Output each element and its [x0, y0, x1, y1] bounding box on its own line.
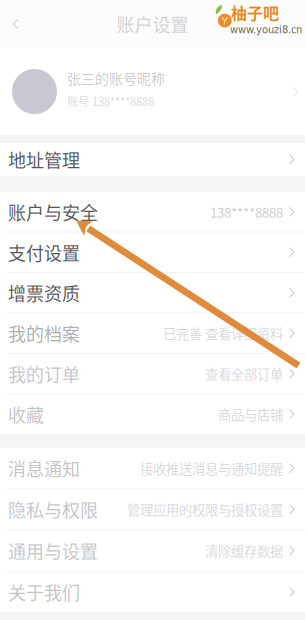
staticText: 张三的账号昵称: [67, 68, 165, 88]
staticText: 138****8888: [210, 202, 283, 221]
button[interactable]: 支付设置: [0, 232, 305, 272]
button[interactable]: 我的档案: [0, 313, 305, 353]
staticText: 接收推送消息与通知提醒: [140, 459, 283, 478]
button[interactable]: 增票资质: [0, 273, 305, 313]
staticText: 地址管理: [8, 146, 80, 173]
staticText: www.youzi8.cn: [230, 24, 302, 36]
button[interactable]: 关于我们: [0, 572, 305, 612]
staticText: 账户设置: [116, 11, 188, 37]
staticText: 支付设置: [8, 239, 80, 265]
staticText: 我的订单: [8, 361, 80, 387]
button[interactable]: 地址管理: [0, 143, 305, 176]
button[interactable]: 收藏: [0, 394, 305, 434]
button[interactable]: 消息通知: [0, 448, 305, 488]
staticText: 账户与安全: [8, 199, 98, 225]
button[interactable]: 通用与设置: [0, 530, 305, 571]
staticText: 增票资质: [8, 280, 80, 306]
button[interactable]: 账户与安全: [0, 192, 305, 232]
staticText: 商品与店铺: [218, 404, 283, 424]
staticText: 清除缓存数据: [205, 541, 283, 560]
staticText: 柚子吧: [231, 1, 279, 24]
button[interactable]: 隐私与权限: [0, 489, 305, 530]
staticText: 消息通知: [8, 455, 80, 481]
button[interactable]: 我的订单: [0, 354, 305, 394]
staticText: 已完善 查看详细资料: [163, 324, 283, 343]
staticText: 查看全部订单: [205, 364, 283, 383]
staticText: 隐私与权限: [8, 496, 98, 522]
staticText: 账号 138****8888: [67, 93, 154, 109]
staticText: 关于我们: [8, 579, 80, 605]
button[interactable]: Back: [0, 0, 31, 48]
staticText: 通用与设置: [8, 538, 98, 564]
staticText: 收藏: [8, 401, 44, 427]
button[interactable]: 张三的账号昵称: [0, 48, 305, 135]
staticText: 我的档案: [8, 320, 80, 346]
staticText: 管理应用的权限与授权设置: [127, 500, 283, 519]
